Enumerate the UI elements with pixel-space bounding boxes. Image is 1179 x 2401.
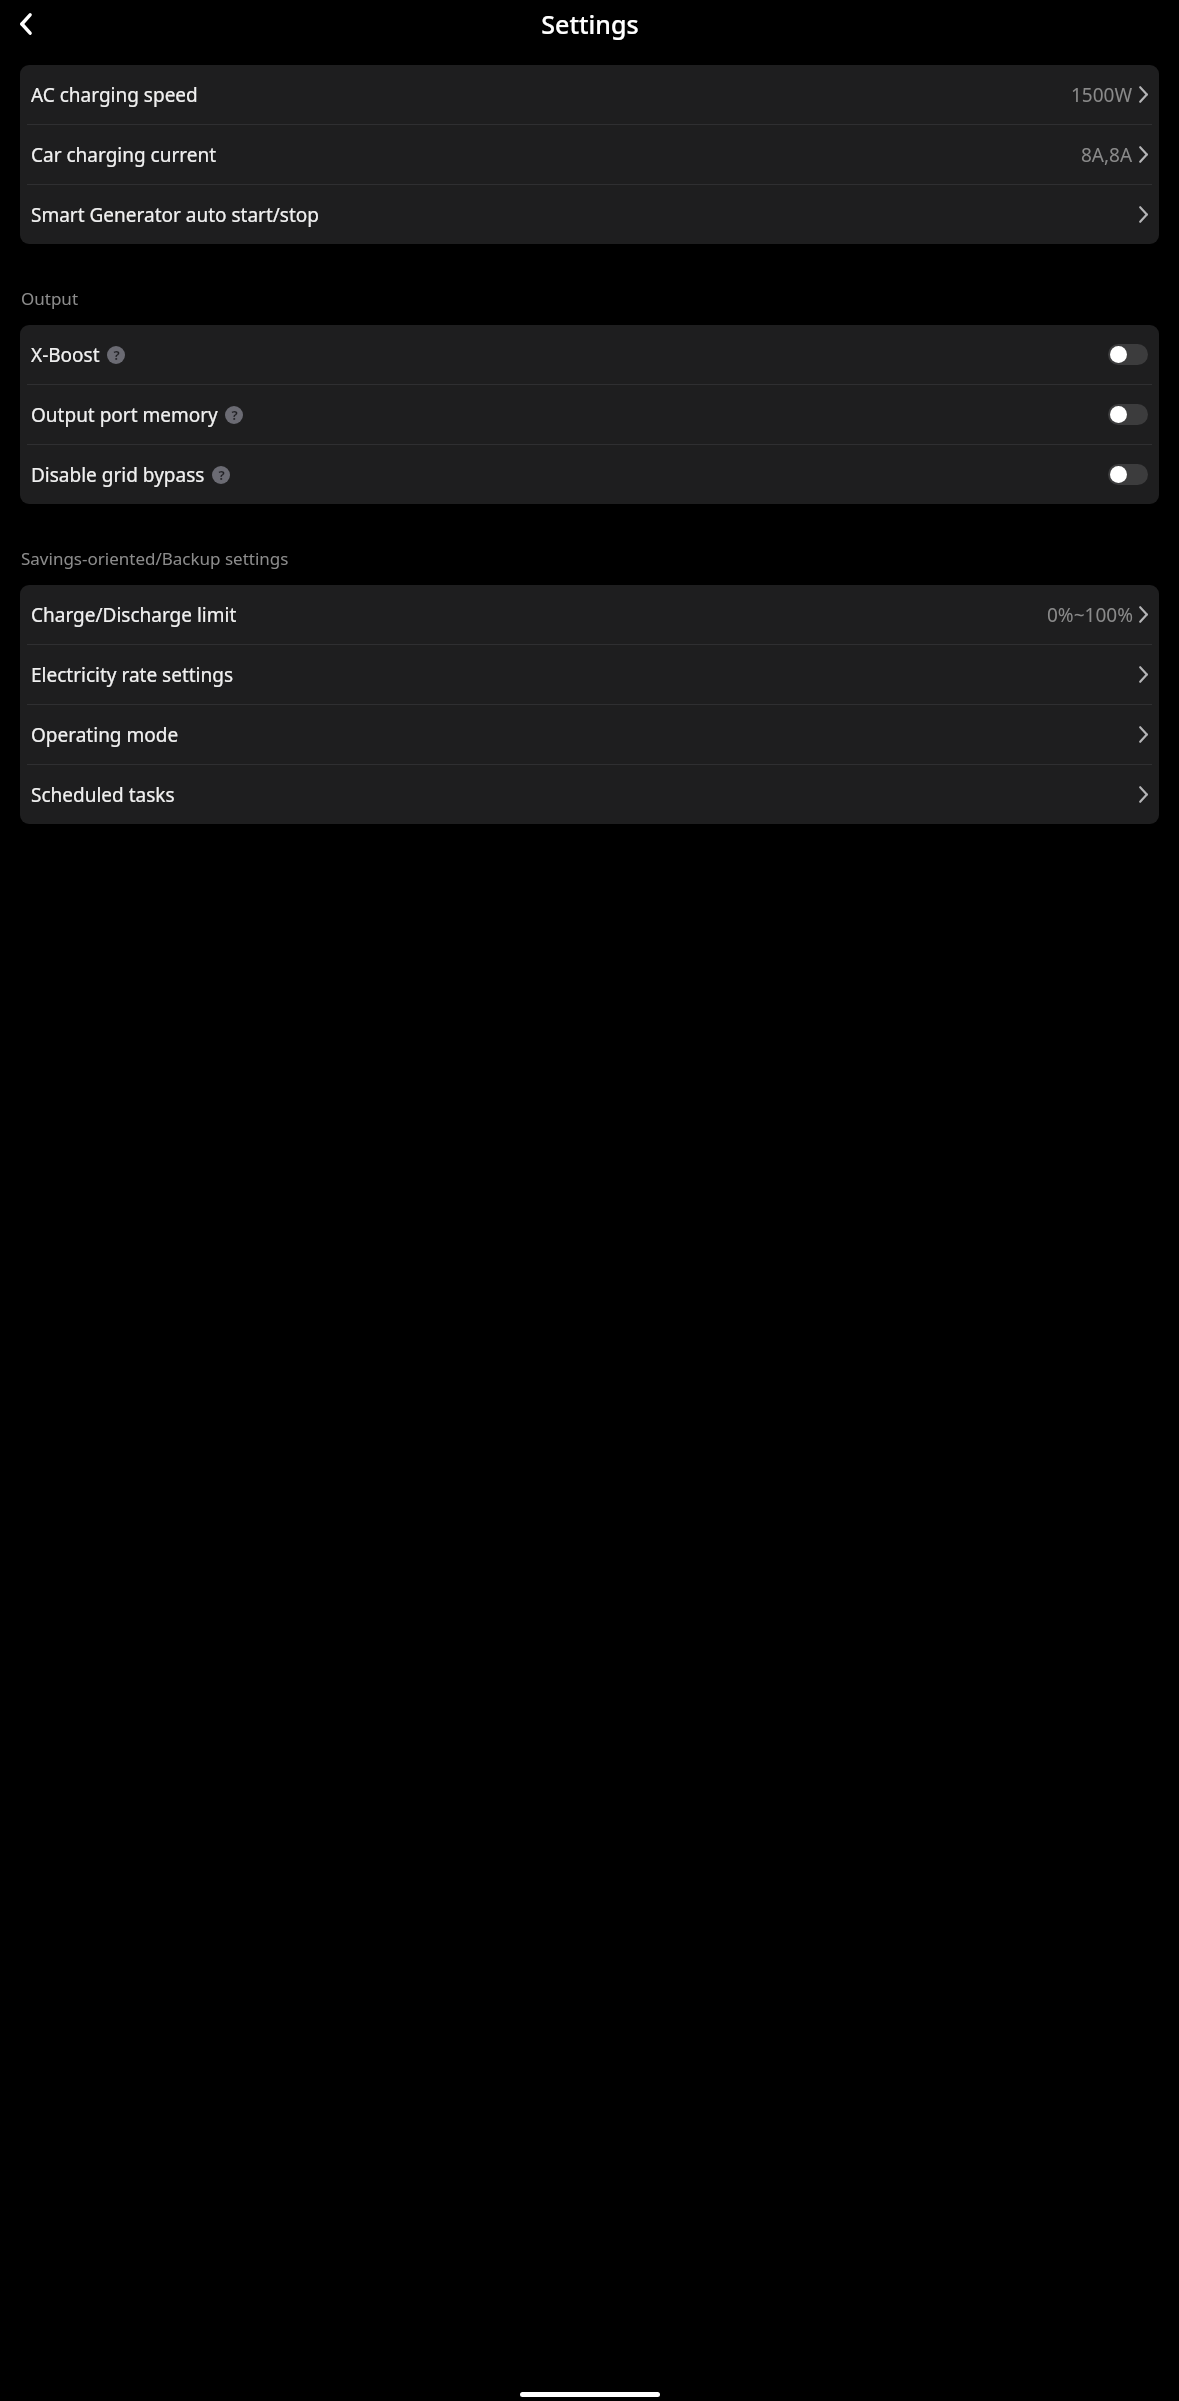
staticText: ?	[113, 346, 120, 364]
button[interactable]: Output port memory	[1108, 404, 1148, 425]
button[interactable]: Electricity rate settings	[20, 645, 1159, 704]
staticText: ?	[218, 466, 225, 484]
button[interactable]: X-Boost	[20, 325, 1159, 384]
button[interactable]: Disable grid bypass	[1108, 464, 1148, 485]
button[interactable]: Help	[107, 346, 125, 364]
staticText: 1500W	[1071, 82, 1133, 108]
staticText: Operating mode	[31, 722, 179, 748]
button[interactable]: Help	[212, 466, 230, 484]
staticText: Electricity rate settings	[31, 662, 234, 688]
staticText: Settings	[541, 7, 639, 41]
staticText: Charge/Discharge limit	[31, 602, 237, 628]
staticText: X-Boost	[31, 342, 100, 368]
staticText: Savings-oriented/Backup settings	[21, 547, 289, 570]
button[interactable]: Charge/Discharge limit	[20, 585, 1159, 644]
staticText: Car charging current	[31, 142, 217, 168]
staticText: Output port memory	[31, 402, 218, 428]
staticText: AC charging speed	[31, 82, 198, 108]
button[interactable]: Output port memory	[20, 385, 1159, 444]
staticText: ?	[231, 406, 238, 424]
button[interactable]: AC charging speed	[20, 65, 1159, 124]
button[interactable]: Help	[225, 406, 243, 424]
staticText: Smart Generator auto start/stop	[31, 202, 320, 228]
button[interactable]: Smart Generator auto start/stop	[20, 185, 1159, 244]
button[interactable]: Car charging current	[20, 125, 1159, 184]
staticText: 8A,8A	[1081, 142, 1133, 168]
staticText: Disable grid bypass	[31, 462, 205, 488]
button[interactable]: Scheduled tasks	[20, 765, 1159, 824]
staticText: 0%~100%	[1047, 602, 1133, 628]
button[interactable]: X-Boost	[1108, 344, 1148, 365]
button[interactable]: Back	[6, 4, 46, 44]
staticText: Scheduled tasks	[31, 782, 175, 808]
button[interactable]: Disable grid bypass	[20, 445, 1159, 504]
button[interactable]: Operating mode	[20, 705, 1159, 764]
staticText: Output	[21, 287, 79, 310]
